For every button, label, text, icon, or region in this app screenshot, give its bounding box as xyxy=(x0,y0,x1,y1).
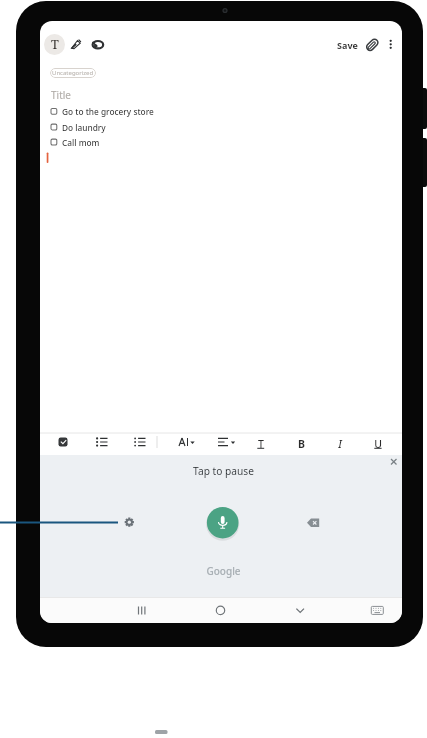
button[interactable] xyxy=(383,35,399,54)
button[interactable] xyxy=(88,34,109,55)
button[interactable] xyxy=(207,507,239,539)
staticText: Go to the grocery store xyxy=(62,106,154,117)
button[interactable] xyxy=(364,35,382,54)
staticText: I xyxy=(338,437,342,451)
staticText: Save xyxy=(337,39,358,51)
button[interactable] xyxy=(210,601,231,621)
button[interactable] xyxy=(252,433,270,451)
button[interactable] xyxy=(290,601,311,621)
button[interactable] xyxy=(292,433,310,451)
staticText: Tap to pause xyxy=(193,464,254,478)
staticText: T xyxy=(258,437,264,451)
staticText: Uncategorized xyxy=(52,69,94,77)
button[interactable]: T xyxy=(44,34,65,55)
staticText: Google xyxy=(206,564,241,578)
button[interactable] xyxy=(48,105,198,118)
button[interactable] xyxy=(216,433,238,451)
button[interactable] xyxy=(54,433,72,451)
button[interactable] xyxy=(120,513,139,532)
button[interactable] xyxy=(93,433,111,451)
button[interactable] xyxy=(331,433,349,451)
button[interactable] xyxy=(131,433,149,451)
button[interactable] xyxy=(48,136,198,149)
button[interactable] xyxy=(369,433,387,451)
staticText: U xyxy=(374,437,382,451)
button[interactable] xyxy=(175,433,197,451)
button[interactable]: Uncategorized xyxy=(50,68,96,78)
button[interactable] xyxy=(326,34,366,55)
staticText: Do laundry xyxy=(62,122,106,133)
button[interactable] xyxy=(385,454,402,470)
staticText: Call mom xyxy=(62,137,100,148)
staticText: Title xyxy=(51,88,71,102)
button[interactable] xyxy=(131,601,152,621)
button[interactable] xyxy=(48,121,198,134)
button[interactable] xyxy=(304,514,324,531)
button[interactable] xyxy=(66,34,87,55)
staticText: B xyxy=(298,437,305,451)
staticText: T xyxy=(51,36,59,53)
button[interactable] xyxy=(367,601,388,621)
